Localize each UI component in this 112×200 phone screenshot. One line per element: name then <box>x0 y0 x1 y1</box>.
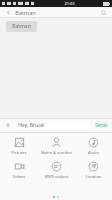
staticText: MMS subject <box>38 174 75 179</box>
staticText: Name & number <box>38 150 75 155</box>
button[interactable]: Videos <box>0 160 38 180</box>
staticText: Batman <box>12 23 31 30</box>
staticText: Send <box>95 122 107 129</box>
button[interactable]: Name & number <box>38 136 75 156</box>
staticText: Audio <box>75 150 112 155</box>
staticText: Pictures <box>0 150 38 155</box>
button[interactable]: Batman <box>6 21 37 32</box>
button[interactable]: Search <box>99 8 108 17</box>
button[interactable]: Add attachment <box>3 120 13 130</box>
button[interactable]: Send <box>93 120 109 131</box>
staticText: Location <box>75 174 112 179</box>
staticText: Videos <box>0 174 38 179</box>
staticText: Hey, Bruce! <box>18 122 45 129</box>
button[interactable]: Audio <box>75 136 112 156</box>
button[interactable]: Back <box>4 8 13 17</box>
button[interactable]: Location <box>75 160 112 180</box>
button[interactable]: Hey, Bruce! <box>15 121 91 130</box>
button[interactable]: MMS subject <box>38 160 75 180</box>
staticText: 21:03 <box>64 1 75 6</box>
staticText: Batman <box>15 9 36 16</box>
button[interactable]: Pictures <box>0 136 38 156</box>
